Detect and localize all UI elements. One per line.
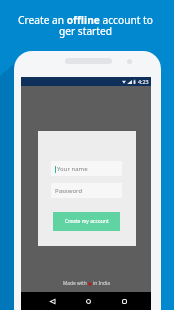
staticText: Made with bbox=[63, 280, 87, 287]
staticText: 4:23 bbox=[138, 78, 149, 85]
staticText: Create an offline account to ger started bbox=[2, 13, 169, 38]
staticText: Your name bbox=[57, 165, 88, 173]
button[interactable]: Recents bbox=[117, 294, 131, 308]
staticText: Password bbox=[55, 187, 83, 195]
button[interactable]: Password bbox=[51, 183, 122, 198]
button[interactable]: Home bbox=[81, 294, 95, 308]
staticText: in India bbox=[93, 280, 110, 287]
button[interactable]: Create my account bbox=[53, 212, 120, 231]
staticText: Create my account bbox=[65, 218, 109, 225]
button[interactable]: Back bbox=[45, 294, 59, 308]
button[interactable]: Your name bbox=[51, 161, 122, 176]
